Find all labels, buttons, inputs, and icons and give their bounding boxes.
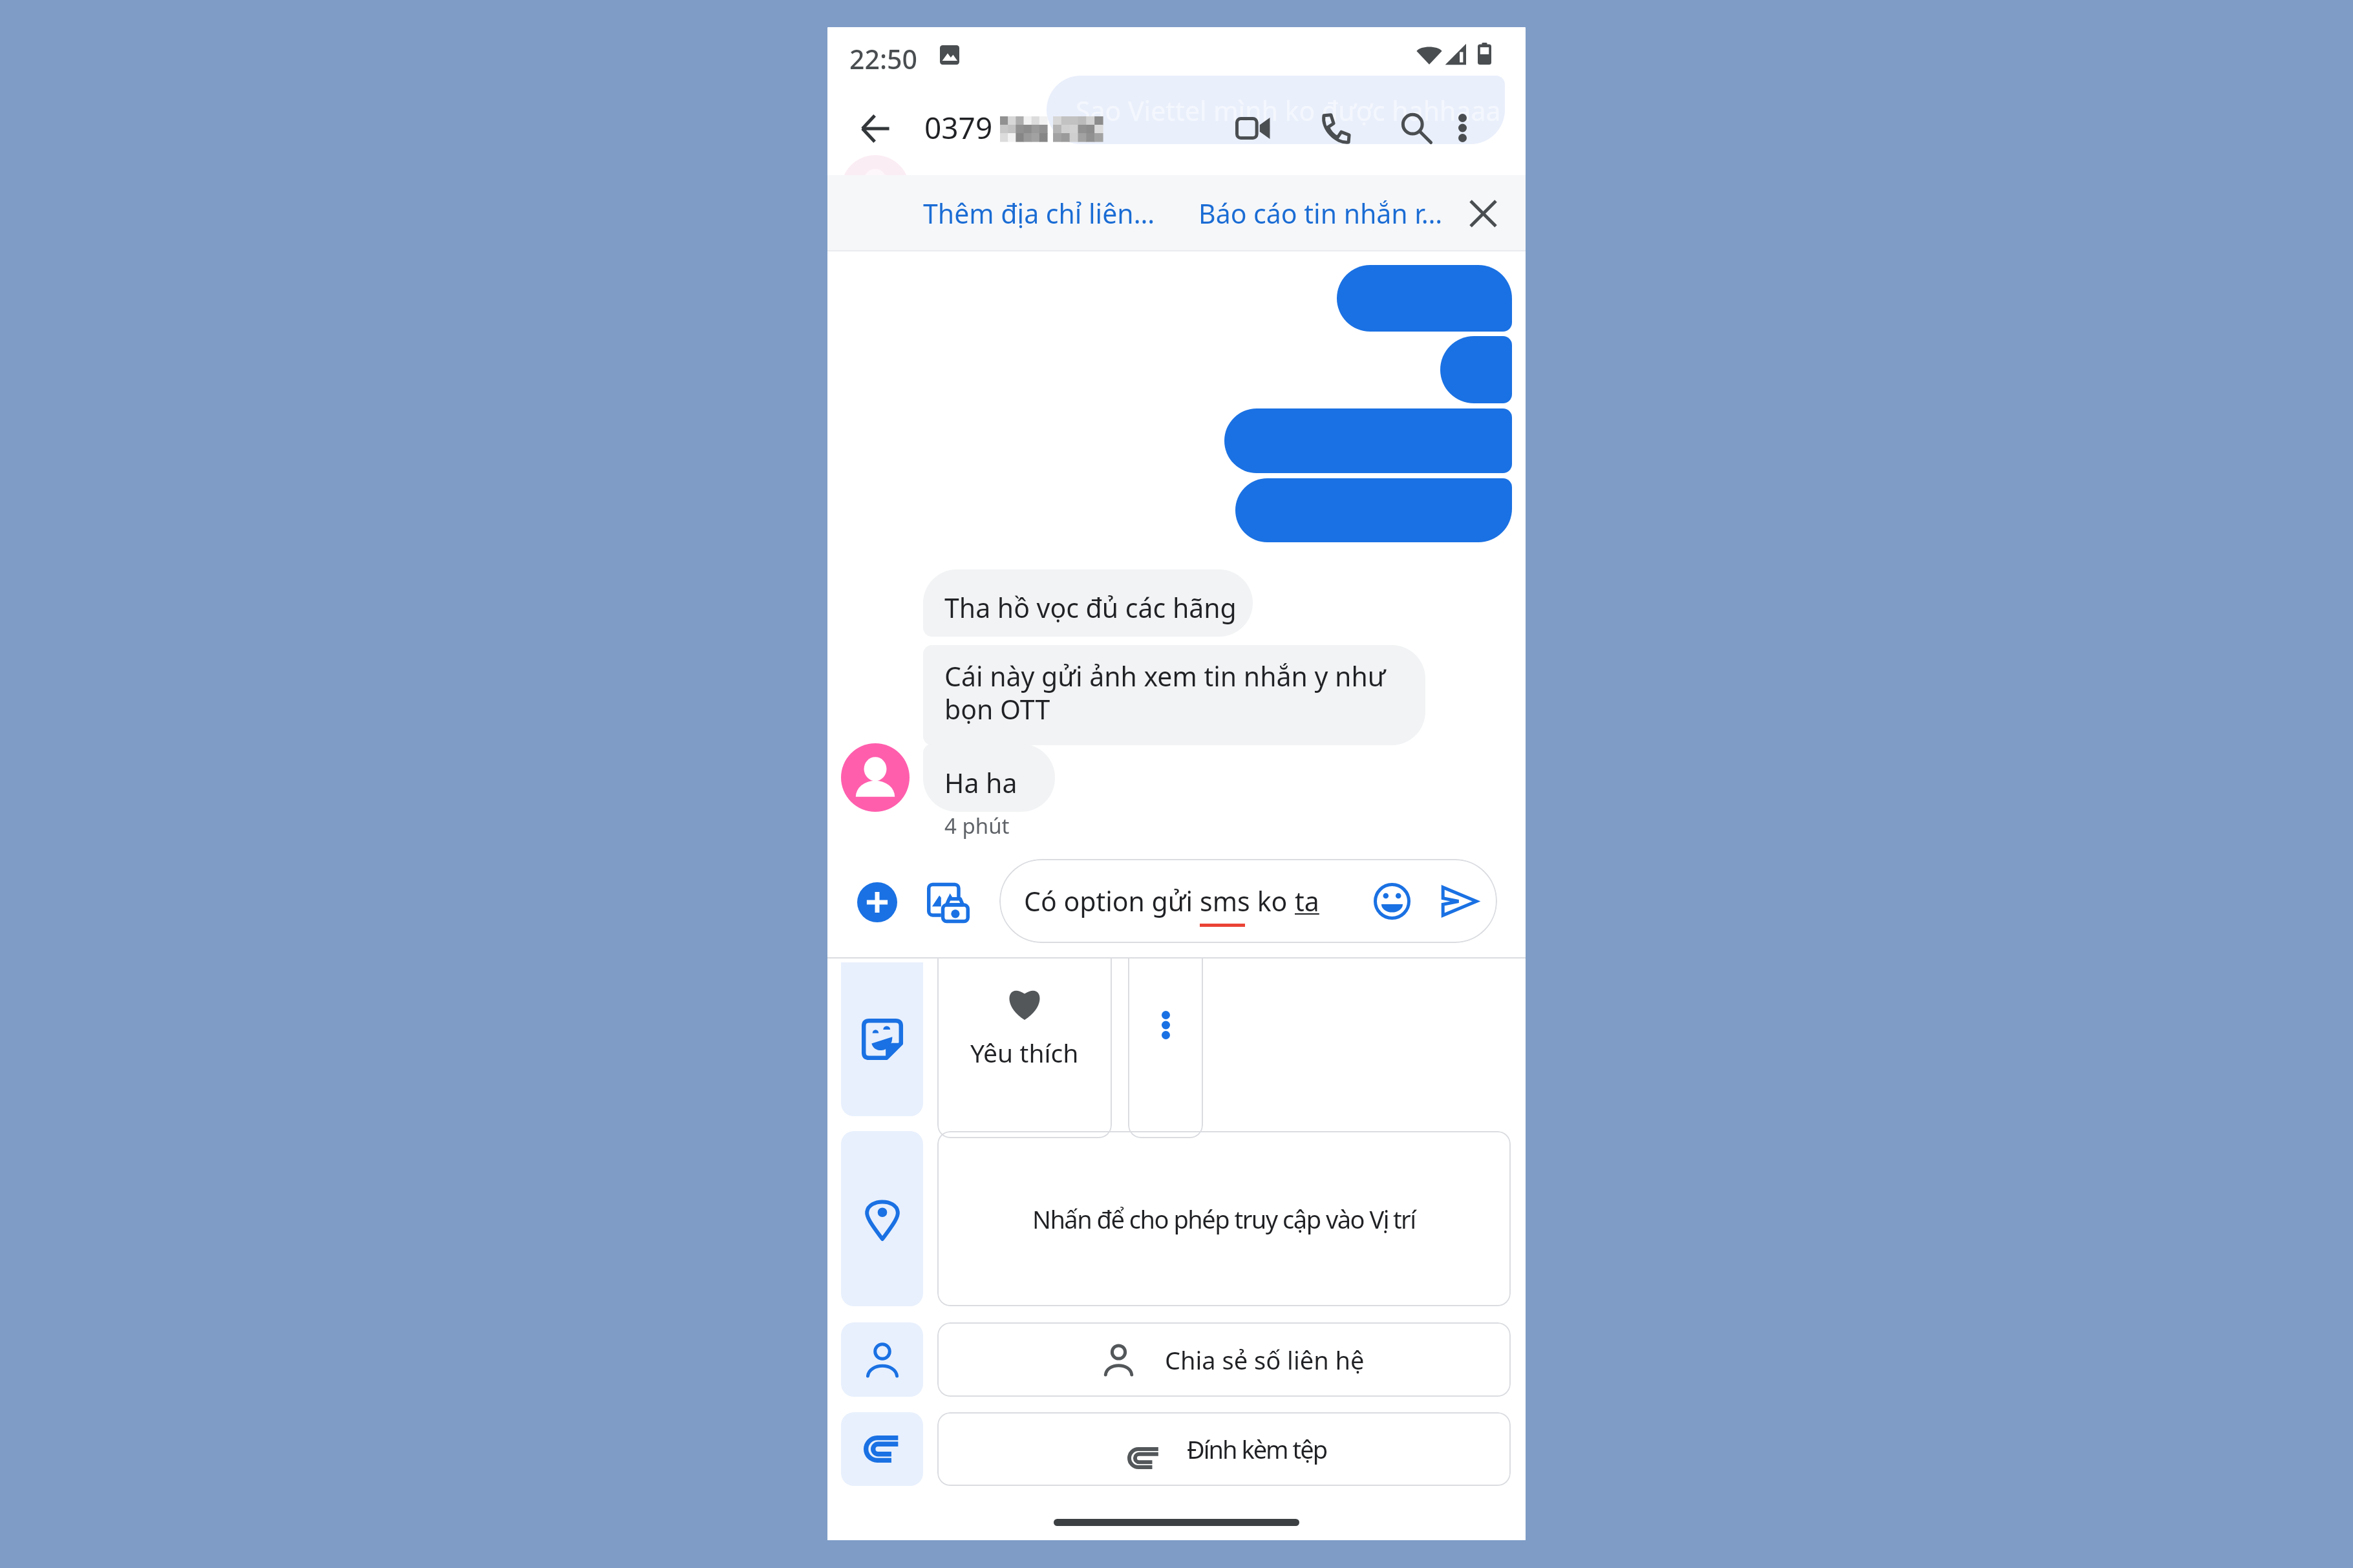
button[interactable]: Emoji	[1363, 872, 1421, 930]
button[interactable]: Video call	[1222, 97, 1284, 159]
button[interactable]: Share contact	[841, 1322, 923, 1397]
button[interactable]: More	[1128, 959, 1203, 1138]
staticText: Thêm địa chỉ liên…	[923, 195, 1155, 231]
staticText: sms	[1200, 883, 1250, 919]
staticText: 0379	[924, 107, 993, 148]
staticText: Nhấn để cho phép truy cập vào Vị trí	[1032, 1202, 1416, 1236]
button[interactable]: Yêu thích	[937, 959, 1112, 1138]
button[interactable]	[1440, 336, 1512, 403]
button[interactable]	[1337, 265, 1512, 332]
button[interactable]: Camera and gallery	[916, 870, 981, 935]
button[interactable]: Back	[844, 98, 906, 160]
staticText: Có option gửi	[1024, 883, 1200, 919]
staticText: Ha ha	[944, 765, 1017, 801]
staticText: 4 phút	[944, 811, 1010, 840]
button[interactable]: Có option gửi	[999, 859, 1497, 943]
button[interactable]: Tha hồ vọc đủ các hãng	[923, 569, 1253, 637]
staticText: Sao Viettel mình ko được hahhaaa	[1076, 92, 1501, 129]
staticText: Tha hồ vọc đủ các hãng	[944, 589, 1237, 626]
staticText: Đính kèm tệp	[1187, 1432, 1327, 1466]
staticText: 22:50	[849, 41, 917, 77]
button[interactable]: Báo cáo tin nhắn r…	[1187, 182, 1454, 244]
staticText: ko	[1250, 883, 1295, 919]
staticText: Báo cáo tin nhắn r…	[1198, 195, 1443, 231]
button[interactable]: Send	[1430, 872, 1488, 930]
button[interactable]: Đính kèm tệp	[937, 1412, 1511, 1486]
staticText: Yêu thích	[970, 1035, 1079, 1070]
button[interactable]: Location	[841, 1131, 923, 1306]
button[interactable]: Stickers	[841, 962, 923, 1116]
staticText: ta	[1295, 883, 1319, 919]
button[interactable]	[1224, 408, 1512, 473]
button[interactable]: More options	[1431, 97, 1493, 159]
button[interactable]: Nhấn để cho phép truy cập vào Vị trí	[937, 1131, 1511, 1306]
button[interactable]: Chia sẻ số liên hệ	[937, 1322, 1511, 1397]
button[interactable]: Dismiss	[1452, 182, 1514, 244]
button[interactable]: Ha ha	[923, 744, 1055, 812]
button[interactable]: Attach file	[841, 1412, 923, 1486]
button[interactable]: Thêm địa chỉ liên…	[911, 182, 1167, 244]
button[interactable]: Search	[1385, 97, 1447, 159]
button[interactable]: Call	[1303, 97, 1365, 159]
button[interactable]	[1235, 478, 1512, 542]
button[interactable]: Cái này gửi ảnh xem tin nhắn y như bọn O…	[923, 645, 1425, 745]
button[interactable]: Add attachment	[845, 870, 910, 935]
staticText: Cái này gửi ảnh xem tin nhắn y như bọn O…	[944, 658, 1386, 727]
staticText: Chia sẻ số liên hệ	[1165, 1343, 1365, 1377]
